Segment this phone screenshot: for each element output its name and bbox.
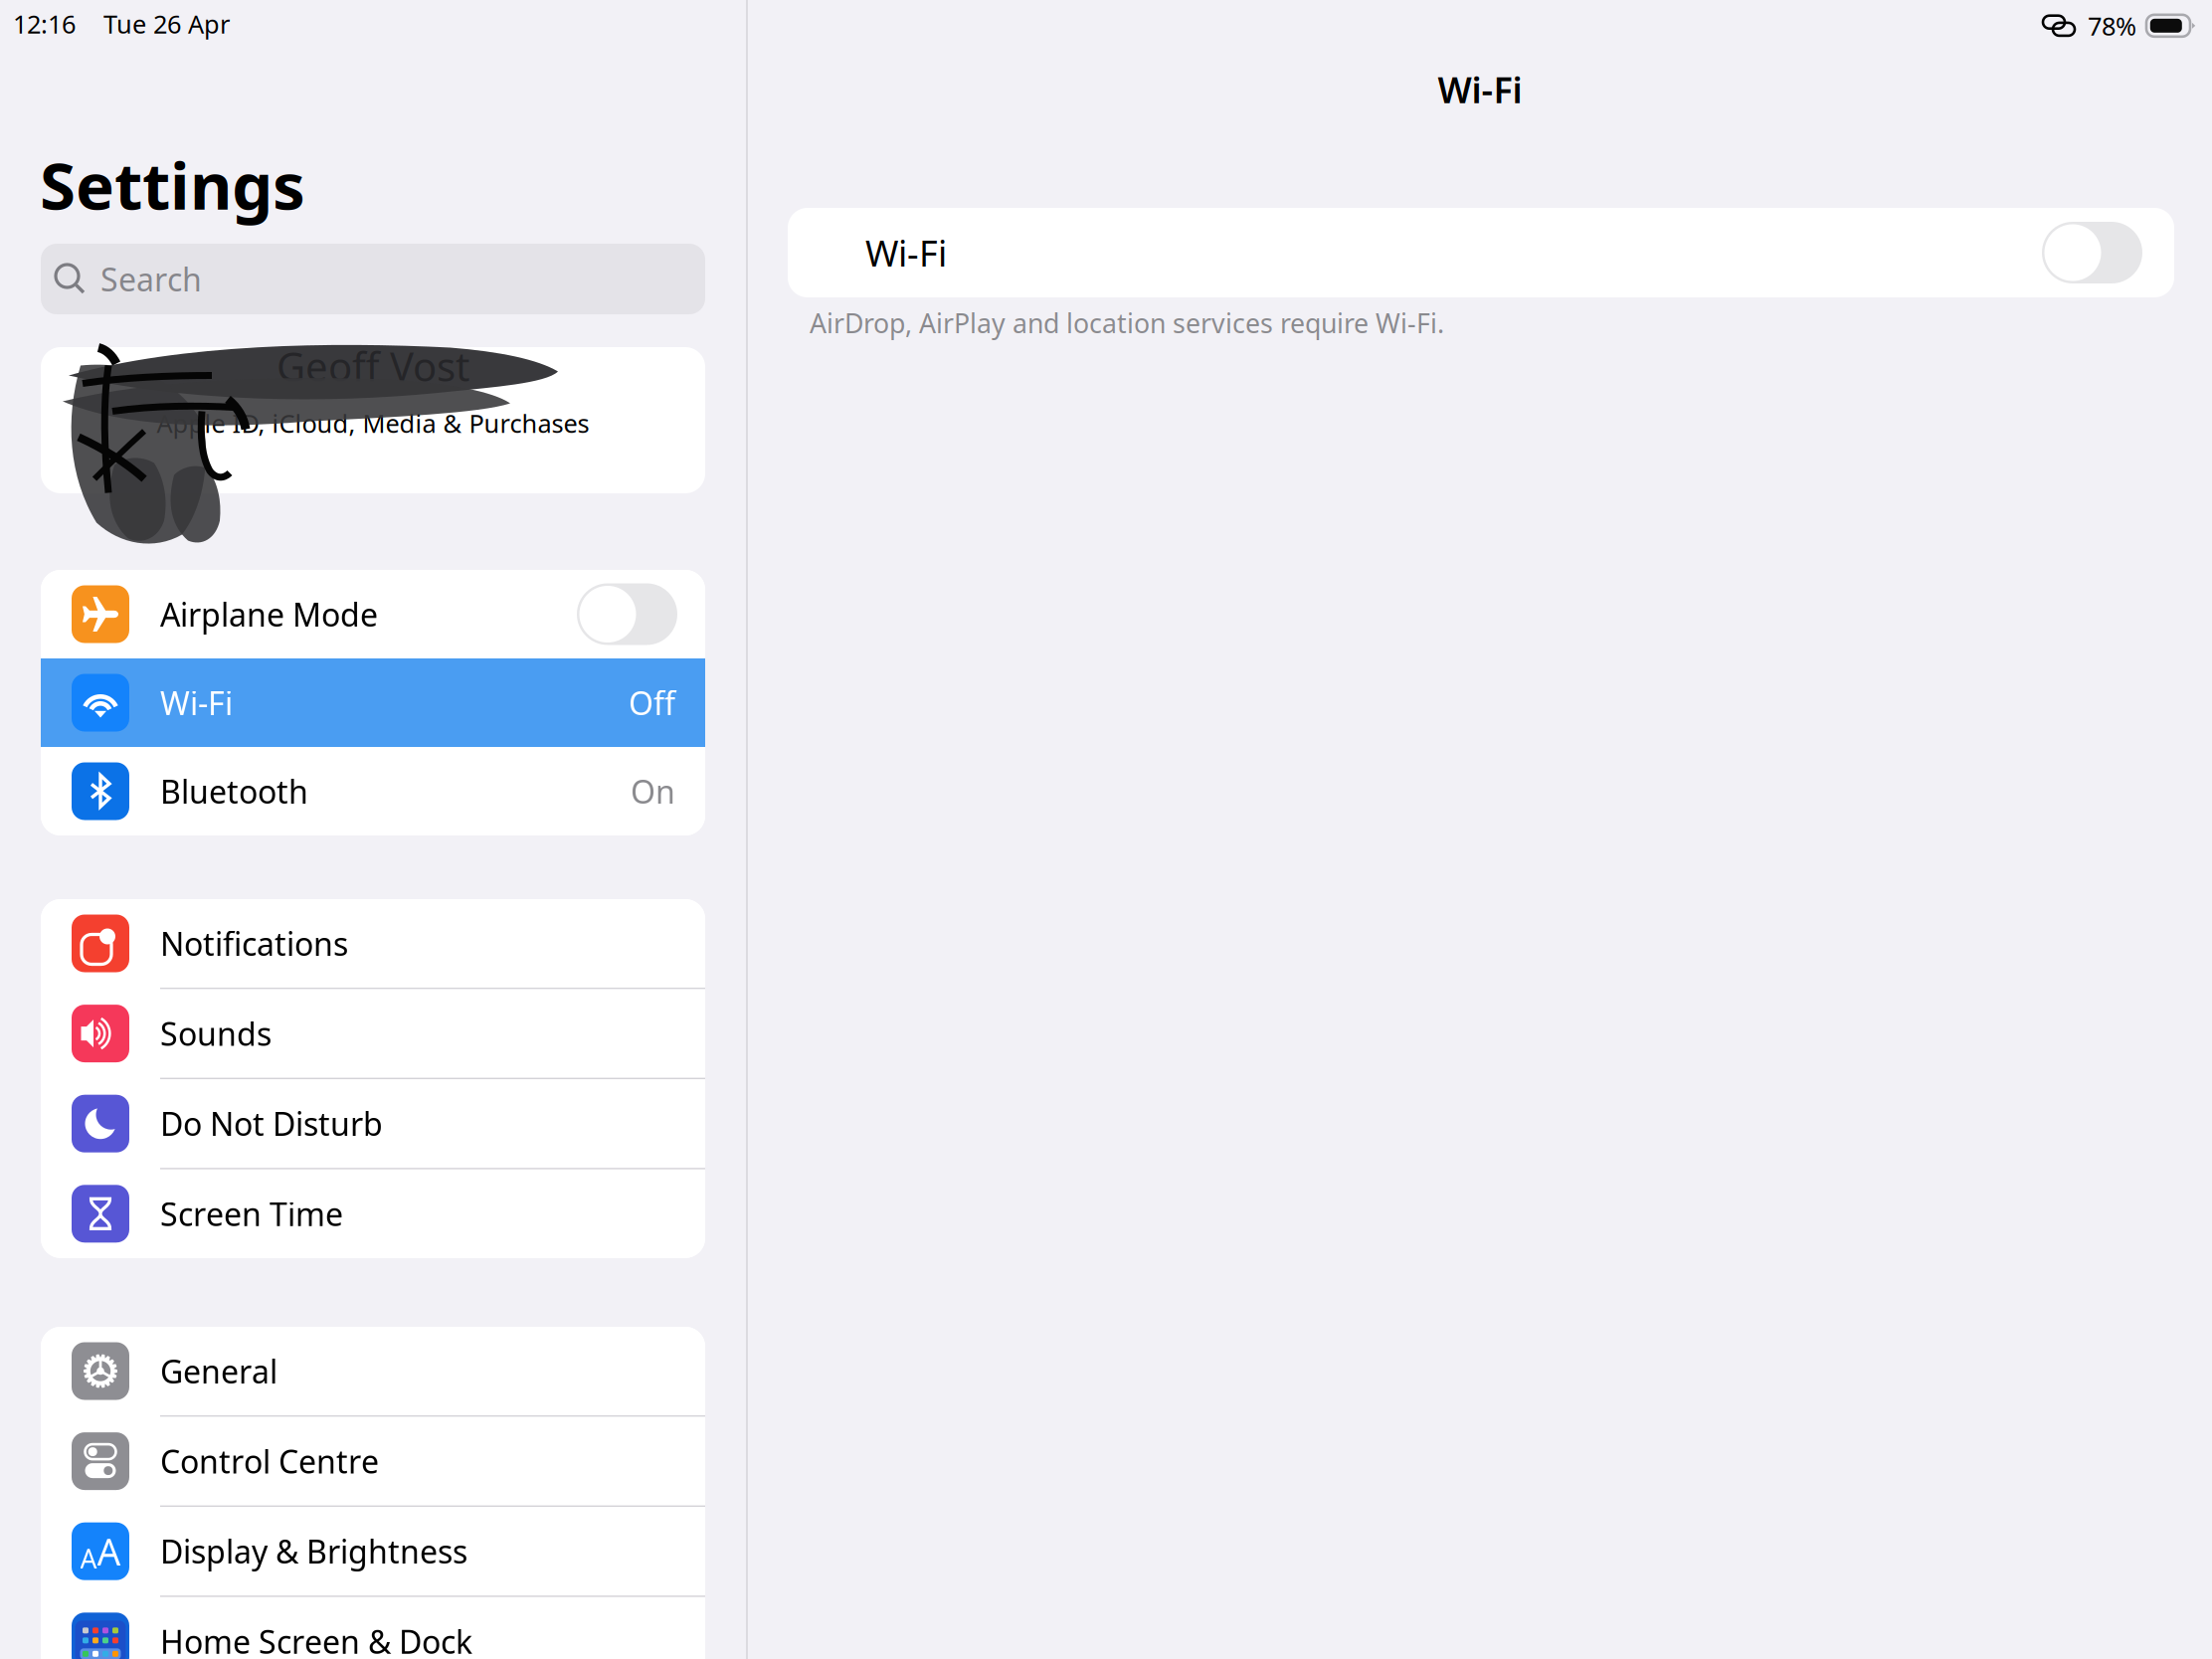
button[interactable]: Screen Time	[41, 1169, 705, 1258]
staticText: Do Not Disturb	[160, 1103, 383, 1145]
button[interactable]: Geoff Vost	[41, 347, 705, 493]
button[interactable]: General	[41, 1327, 705, 1415]
staticText: Settings	[40, 141, 305, 228]
staticText: Display & Brightness	[160, 1530, 467, 1572]
staticText: On	[631, 770, 675, 812]
button[interactable]: Wi-Fi	[788, 208, 2174, 297]
button[interactable]: Search	[41, 244, 705, 314]
button[interactable]: Airplane Mode	[41, 570, 705, 658]
staticText: Notifications	[160, 922, 348, 965]
staticText: A	[97, 1527, 121, 1576]
staticText: Apple ID, iCloud, Media & Purchases	[157, 406, 589, 440]
staticText: 78%	[2088, 9, 2136, 42]
button[interactable]: Sounds	[41, 989, 705, 1078]
button[interactable]: A	[41, 1507, 705, 1596]
staticText: Control Centre	[160, 1440, 379, 1482]
staticText: 12:16	[13, 7, 76, 40]
staticText: A	[80, 1541, 97, 1576]
staticText: Wi-Fi	[160, 682, 233, 724]
staticText: Home Screen & Dock	[160, 1620, 472, 1659]
staticText: Airplane Mode	[160, 593, 378, 635]
staticText: AirDrop, AirPlay and location services r…	[810, 305, 1444, 341]
staticText: Search	[100, 258, 202, 300]
button[interactable]: Wi-Fi	[41, 658, 705, 747]
staticText: Tue 26 Apr	[103, 7, 230, 40]
staticText: Sounds	[160, 1012, 272, 1055]
button[interactable]: Notifications	[41, 899, 705, 988]
button[interactable]: Home Screen & Dock	[41, 1597, 705, 1659]
button[interactable]: Bluetooth	[41, 747, 705, 835]
staticText: Screen Time	[160, 1193, 343, 1235]
staticText: General	[160, 1350, 277, 1392]
staticText: Bluetooth	[160, 770, 308, 812]
button[interactable]: Do Not Disturb	[41, 1079, 705, 1168]
staticText: Off	[629, 682, 675, 724]
staticText: Wi-Fi	[865, 229, 947, 276]
button[interactable]: Control Centre	[41, 1417, 705, 1505]
staticText: Wi-Fi	[1438, 66, 1522, 113]
staticText: Geoff Vost	[276, 340, 469, 392]
